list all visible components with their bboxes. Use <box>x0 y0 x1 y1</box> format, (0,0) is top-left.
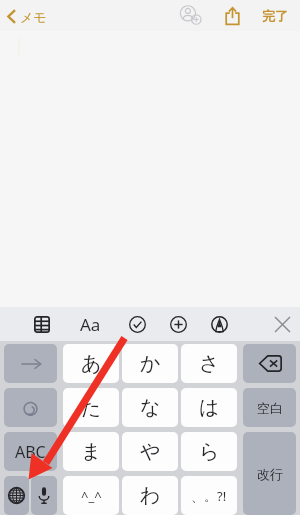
button[interactable]: Undo <box>4 388 57 427</box>
button[interactable]: Checklist <box>120 307 154 341</box>
staticText: ABC <box>15 441 46 463</box>
staticText: さ <box>199 351 220 376</box>
button[interactable]: ^_^ <box>63 476 119 515</box>
staticText: か <box>140 351 161 376</box>
button[interactable]: ら <box>181 432 237 471</box>
button[interactable]: 改行 <box>243 432 296 515</box>
staticText: 完了 <box>262 8 288 24</box>
staticText: な <box>140 395 161 420</box>
button[interactable]: メモ <box>0 5 55 28</box>
button[interactable]: 完了 <box>256 4 294 28</box>
staticText: ま <box>81 439 102 464</box>
button[interactable]: Hide keyboard <box>265 307 299 341</box>
staticText: わ <box>140 483 161 508</box>
button[interactable]: Add attachment <box>161 307 195 341</box>
staticText: ら <box>199 439 220 464</box>
button[interactable]: Add people <box>175 0 207 32</box>
button[interactable]: 空白 <box>243 388 296 427</box>
button[interactable]: さ <box>181 344 237 383</box>
staticText: 空白 <box>257 400 283 416</box>
staticText: は <box>199 395 220 420</box>
button[interactable]: や <box>122 432 178 471</box>
button[interactable]: Markup <box>202 307 236 341</box>
button[interactable]: Text format <box>73 307 107 341</box>
staticText: た <box>81 395 102 420</box>
button[interactable]: Dictation <box>31 476 57 515</box>
button[interactable]: Share <box>216 0 248 32</box>
button[interactable]: Delete <box>243 344 296 383</box>
staticText: あ <box>81 351 102 376</box>
button[interactable]: 、。?! <box>181 476 237 515</box>
button[interactable]: か <box>122 344 178 383</box>
staticText: 改行 <box>257 466 283 482</box>
button[interactable]: わ <box>122 476 178 515</box>
button[interactable]: Table <box>25 307 59 341</box>
staticText: 、。?! <box>191 487 227 505</box>
button[interactable]: ABC <box>4 432 57 471</box>
button[interactable]: Next candidate <box>4 344 57 383</box>
staticText: ^_^ <box>81 487 102 505</box>
button[interactable]: ま <box>63 432 119 471</box>
button[interactable]: た <box>63 388 119 427</box>
staticText: や <box>140 439 161 464</box>
staticText: Aa <box>80 313 101 336</box>
button[interactable]: あ <box>63 344 119 383</box>
button[interactable]: な <box>122 388 178 427</box>
staticText: メモ <box>20 9 47 25</box>
button[interactable]: は <box>181 388 237 427</box>
button[interactable]: Change keyboard <box>4 476 29 515</box>
